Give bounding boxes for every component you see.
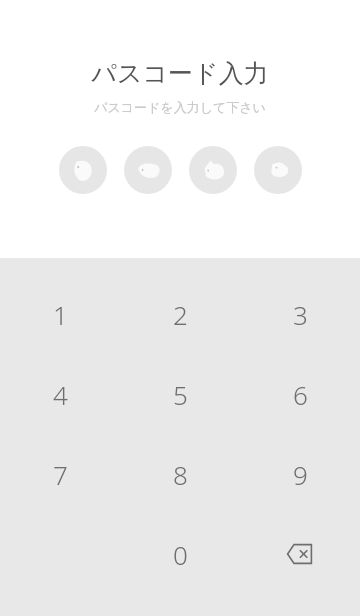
staticText: 1 bbox=[53, 297, 68, 332]
staticText: 5 bbox=[173, 377, 188, 412]
button[interactable]: 7 bbox=[0, 434, 120, 514]
staticText: 7 bbox=[53, 457, 68, 492]
button[interactable]: 9 bbox=[240, 434, 360, 514]
button[interactable]: 3 bbox=[240, 274, 360, 354]
button[interactable]: 1 bbox=[0, 274, 120, 354]
staticText: 8 bbox=[173, 457, 188, 492]
button[interactable]: 2 bbox=[120, 274, 240, 354]
staticText: 6 bbox=[293, 377, 308, 412]
staticText: パスコード入力 bbox=[91, 58, 269, 89]
button[interactable]: 6 bbox=[240, 354, 360, 434]
button[interactable]: 5 bbox=[120, 354, 240, 434]
button[interactable]: 8 bbox=[120, 434, 240, 514]
staticText: パスコードを入力して下さい bbox=[94, 99, 266, 115]
staticText: 3 bbox=[293, 297, 308, 332]
staticText: 2 bbox=[173, 297, 188, 332]
staticText: 4 bbox=[53, 377, 68, 412]
button[interactable]: 0 bbox=[120, 514, 240, 594]
staticText: 0 bbox=[173, 537, 188, 572]
staticText: 9 bbox=[293, 457, 308, 492]
button[interactable]: 4 bbox=[0, 354, 120, 434]
button[interactable]: Backspace bbox=[240, 514, 360, 594]
